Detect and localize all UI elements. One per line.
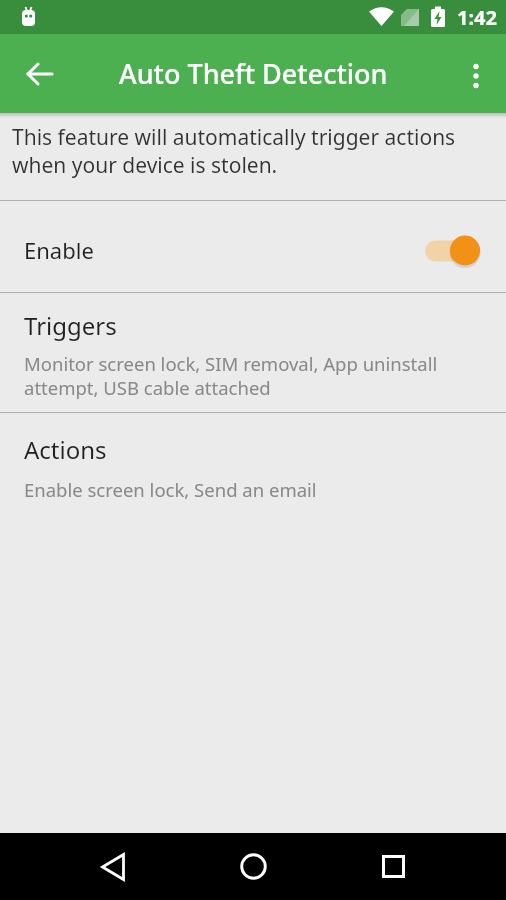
button[interactable]	[16, 50, 64, 98]
staticText: Monitor screen lock, SIM removal, App un…	[24, 351, 438, 400]
button[interactable]	[455, 53, 496, 94]
staticText: Enable screen lock, Send an email	[24, 477, 317, 502]
staticText: Auto Theft Detection	[119, 55, 388, 92]
staticText: Actions	[24, 433, 107, 466]
button[interactable]	[218, 833, 288, 900]
staticText: Enable	[24, 235, 94, 265]
button[interactable]	[358, 833, 428, 900]
staticText: This feature will automatically trigger …	[12, 123, 456, 179]
button[interactable]: Enable	[0, 201, 506, 292]
button[interactable]: Actions	[0, 413, 506, 523]
button[interactable]	[78, 833, 148, 900]
staticText: Triggers	[24, 309, 117, 342]
button[interactable]	[425, 235, 481, 267]
staticText: 1:42	[457, 4, 497, 31]
button[interactable]: Triggers	[0, 293, 506, 412]
